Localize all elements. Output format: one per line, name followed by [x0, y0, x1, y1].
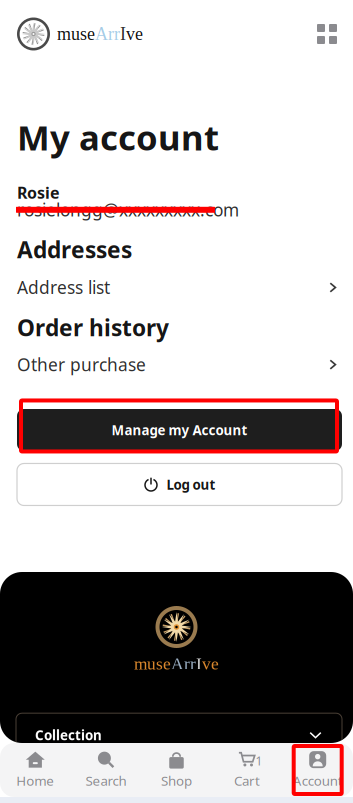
staticText: rr — [184, 654, 196, 673]
button[interactable]: Search — [71, 748, 141, 792]
staticText: Other purchase — [17, 353, 146, 376]
staticText: Search — [85, 772, 126, 789]
staticText: Shop — [161, 772, 192, 789]
staticText: Order history — [17, 312, 169, 342]
staticText: rr — [108, 24, 120, 44]
button[interactable]: muse — [17, 17, 143, 50]
button[interactable]: Home — [0, 748, 71, 792]
staticText: Account — [293, 772, 343, 789]
button[interactable]: Collection — [16, 713, 342, 757]
button[interactable]: Menu — [309, 16, 345, 52]
staticText: Home — [16, 772, 54, 789]
staticText: A — [171, 654, 184, 673]
staticText: ve — [202, 654, 219, 673]
staticText: muse — [134, 654, 171, 673]
staticText: Manage my Account — [111, 421, 247, 439]
staticText: Addresses — [17, 234, 132, 264]
staticText: Rosie — [17, 182, 60, 203]
staticText: Cart — [234, 772, 260, 789]
button[interactable]: Manage my Account — [17, 409, 342, 451]
staticText: Log out — [166, 476, 215, 493]
button[interactable]: Other purchase — [0, 349, 353, 379]
button[interactable]: Address list — [0, 272, 353, 302]
staticText: My account — [17, 114, 219, 160]
staticText: I — [120, 24, 126, 44]
button[interactable]: Cart — [212, 748, 282, 792]
button[interactable]: Account — [282, 748, 353, 792]
staticText: A — [95, 24, 108, 44]
staticText: ve — [126, 24, 143, 44]
button[interactable]: Shop — [141, 748, 212, 792]
button[interactable]: Log out — [17, 463, 342, 505]
staticText: 1 — [256, 753, 263, 769]
staticText: I — [196, 654, 202, 673]
staticText: Collection — [35, 726, 102, 744]
staticText: rosielongg@xxxxxxxxx.com — [17, 198, 239, 221]
staticText: Address list — [17, 276, 110, 299]
staticText: muse — [57, 24, 95, 44]
